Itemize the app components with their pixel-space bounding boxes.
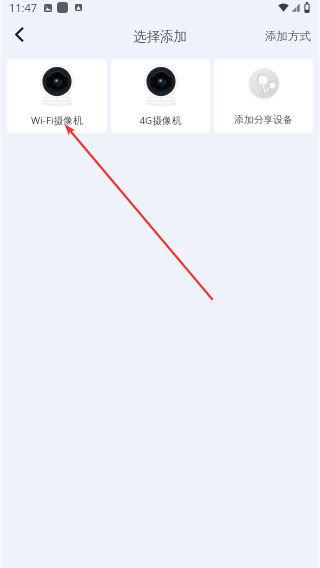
staticText: Wi-Fi摄像机 [31, 114, 83, 127]
button[interactable]: 添加方式 [256, 25, 320, 47]
staticText: 4G摄像机 [139, 114, 182, 127]
button[interactable]: 4G摄像机 [111, 59, 210, 133]
staticText: 添加方式 [265, 29, 311, 43]
staticText: 11:47 [9, 0, 38, 15]
button[interactable]: 添加分享设备 [214, 59, 313, 133]
button[interactable]: Wi-Fi摄像机 [7, 59, 107, 133]
staticText: 添加分享设备 [234, 114, 293, 126]
staticText: 选择添加 [133, 28, 187, 45]
button[interactable]: Back [0, 20, 38, 49]
